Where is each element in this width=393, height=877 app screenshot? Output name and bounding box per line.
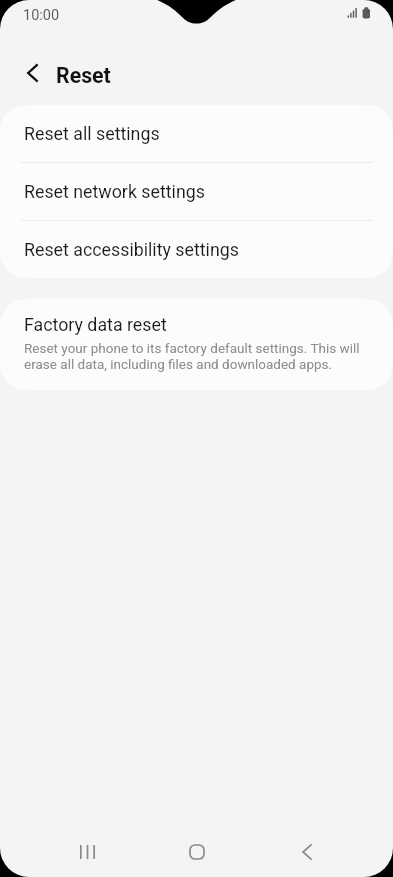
button[interactable]: Reset accessibility settings — [0, 221, 393, 278]
staticText: Reset accessibility settings — [24, 239, 239, 260]
staticText: Factory data reset — [24, 314, 167, 335]
button[interactable]: Factory data reset — [0, 299, 393, 390]
button[interactable]: Recent apps — [63, 828, 111, 876]
button[interactable]: Back — [283, 828, 331, 876]
button[interactable]: Reset network settings — [0, 163, 393, 220]
button[interactable]: Back — [12, 53, 52, 93]
staticText: 10:00 — [23, 7, 60, 24]
staticText: Reset network settings — [24, 181, 205, 202]
staticText: Reset your phone to its factory default … — [24, 340, 369, 373]
button[interactable]: Home — [173, 828, 221, 876]
staticText: Reset all settings — [24, 123, 160, 144]
staticText: Reset — [56, 63, 111, 88]
button[interactable]: Reset all settings — [0, 105, 393, 162]
